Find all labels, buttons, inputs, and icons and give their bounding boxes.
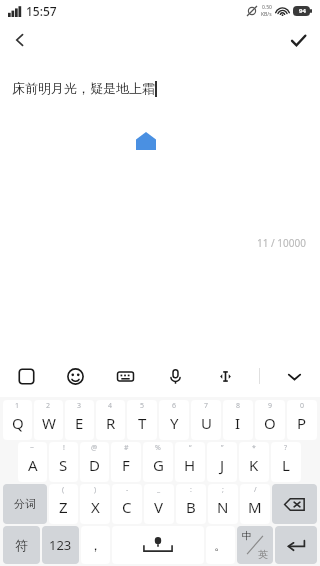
staticText: P bbox=[297, 413, 307, 433]
staticText: ? bbox=[284, 443, 288, 453]
staticText: N bbox=[217, 497, 229, 517]
button[interactable]: 1 bbox=[3, 400, 32, 440]
button[interactable]: - bbox=[112, 484, 142, 524]
staticText: * bbox=[252, 443, 256, 453]
staticText: ~ bbox=[30, 443, 35, 453]
staticText: 中 bbox=[242, 529, 252, 542]
button[interactable]: Voice input bbox=[159, 360, 191, 392]
button[interactable]: “ bbox=[175, 442, 205, 482]
staticText: KB/s bbox=[261, 11, 272, 18]
button[interactable]: ? bbox=[271, 442, 301, 482]
button[interactable]: Backspace bbox=[272, 484, 317, 524]
button[interactable]: ” bbox=[207, 442, 237, 482]
staticText: Q bbox=[12, 413, 24, 433]
staticText: 3 bbox=[77, 401, 82, 411]
staticText: 0.50 bbox=[262, 4, 272, 11]
button[interactable]: Keyboard bbox=[109, 360, 141, 392]
staticText: # bbox=[124, 443, 129, 453]
staticText: 11 / 10000 bbox=[257, 236, 306, 250]
staticText: 5 bbox=[140, 401, 145, 411]
staticText: ! bbox=[63, 443, 65, 453]
staticText: U bbox=[201, 413, 212, 433]
button[interactable]: 5 bbox=[127, 400, 157, 440]
button[interactable]: Move cursor bbox=[209, 360, 241, 392]
staticText: : bbox=[190, 485, 192, 495]
staticText: 8 bbox=[236, 401, 241, 411]
button[interactable]: 4 bbox=[96, 400, 125, 440]
staticText: E bbox=[75, 413, 84, 433]
button[interactable]: 6 bbox=[159, 400, 189, 440]
button[interactable]: / bbox=[240, 484, 270, 524]
button[interactable]: Space bbox=[112, 526, 204, 564]
button[interactable]: Back bbox=[0, 22, 40, 58]
button[interactable]: 3 bbox=[65, 400, 94, 440]
staticText: ( bbox=[62, 485, 65, 495]
staticText: % bbox=[155, 443, 161, 453]
staticText: A bbox=[28, 455, 38, 475]
staticText: Z bbox=[59, 497, 68, 517]
button[interactable]: Enter bbox=[275, 526, 317, 564]
staticText: F bbox=[122, 455, 130, 475]
staticText: 床前明月光，疑是地上霜 bbox=[12, 80, 155, 96]
button[interactable]: * bbox=[239, 442, 269, 482]
button[interactable]: 分词 bbox=[3, 484, 47, 524]
staticText: O bbox=[264, 413, 276, 433]
button[interactable]: 2 bbox=[34, 400, 63, 440]
staticText: T bbox=[138, 413, 147, 433]
staticText: R bbox=[106, 413, 116, 433]
button[interactable]: _ bbox=[144, 484, 174, 524]
staticText: 1 bbox=[15, 401, 20, 411]
staticText: D bbox=[89, 455, 100, 475]
button[interactable]: ; bbox=[208, 484, 238, 524]
button[interactable]: ， bbox=[81, 526, 110, 564]
button[interactable]: % bbox=[143, 442, 173, 482]
staticText: 符 bbox=[15, 537, 28, 553]
staticText: 0 bbox=[300, 401, 305, 411]
staticText: 9 bbox=[268, 401, 273, 411]
button[interactable]: ~ bbox=[18, 442, 47, 482]
staticText: I bbox=[235, 413, 241, 433]
button[interactable]: ( bbox=[49, 484, 78, 524]
staticText: Y bbox=[170, 413, 179, 433]
button[interactable]: Emoji bbox=[59, 360, 91, 392]
staticText: W bbox=[42, 413, 56, 433]
staticText: 英 bbox=[258, 548, 268, 561]
staticText: H bbox=[184, 455, 196, 475]
button[interactable]: Sogou input bbox=[10, 360, 42, 392]
staticText: _ bbox=[157, 485, 161, 495]
button[interactable]: 7 bbox=[191, 400, 221, 440]
button[interactable]: 123 bbox=[42, 526, 79, 564]
staticText: C bbox=[122, 497, 132, 517]
button[interactable]: 8 bbox=[223, 400, 253, 440]
staticText: 。 bbox=[214, 537, 227, 553]
button[interactable]: @ bbox=[80, 442, 109, 482]
button[interactable]: Hide keyboard bbox=[278, 360, 310, 392]
button[interactable]: 0 bbox=[287, 400, 317, 440]
staticText: @ bbox=[91, 443, 98, 453]
staticText: “ bbox=[189, 443, 192, 453]
staticText: 分词 bbox=[14, 497, 36, 511]
staticText: - bbox=[126, 485, 129, 495]
button[interactable]: 9 bbox=[255, 400, 285, 440]
staticText: 4 bbox=[108, 401, 113, 411]
staticText: 2 bbox=[46, 401, 51, 411]
staticText: ” bbox=[221, 443, 224, 453]
staticText: J bbox=[220, 455, 225, 475]
button[interactable]: # bbox=[111, 442, 141, 482]
button[interactable]: Confirm bbox=[276, 22, 320, 58]
button[interactable]: ) bbox=[80, 484, 110, 524]
staticText: V bbox=[154, 497, 164, 517]
staticText: K bbox=[249, 455, 259, 475]
staticText: M bbox=[248, 497, 262, 517]
staticText: S bbox=[59, 455, 68, 475]
button[interactable]: 。 bbox=[206, 526, 235, 564]
staticText: 94 bbox=[299, 7, 306, 15]
staticText: 15:57 bbox=[26, 3, 57, 19]
button[interactable]: ! bbox=[49, 442, 78, 482]
button[interactable]: : bbox=[176, 484, 206, 524]
button[interactable]: 中 bbox=[237, 526, 273, 564]
staticText: 123 bbox=[49, 536, 72, 554]
button[interactable]: 符 bbox=[3, 526, 40, 564]
staticText: 7 bbox=[204, 401, 209, 411]
staticText: ; bbox=[222, 485, 224, 495]
